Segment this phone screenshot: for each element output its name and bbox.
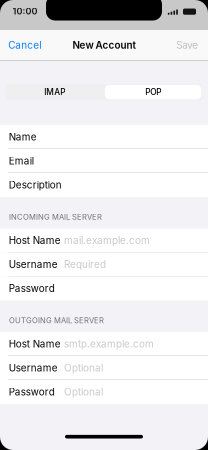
staticText: Save [176, 39, 198, 51]
staticText: INCOMING MAIL SERVER [9, 212, 102, 221]
staticText: Username [9, 258, 58, 270]
button[interactable]: Host Name [0, 228, 208, 252]
staticText: Optional [64, 362, 103, 374]
staticText: Email [9, 155, 34, 167]
button[interactable]: Host Name [0, 332, 208, 356]
staticText: Required [64, 258, 106, 270]
staticText: 10:00 [12, 6, 37, 17]
staticText: Password [9, 282, 55, 294]
staticText: OUTGOING MAIL SERVER [9, 316, 104, 325]
staticText: New Account [72, 39, 135, 51]
staticText: Password [9, 386, 55, 398]
button[interactable]: Email [0, 149, 208, 173]
button[interactable]: POP [104, 84, 202, 100]
staticText: Username [9, 362, 58, 374]
staticText: Host Name [9, 338, 61, 350]
staticText: mail.example.com [64, 234, 150, 246]
button[interactable]: Password [0, 276, 208, 300]
staticText: POP [145, 87, 161, 97]
staticText: smtp.example.com [64, 338, 154, 350]
staticText: IMAP [44, 87, 65, 97]
staticText: Name [9, 131, 37, 143]
button[interactable]: Save [169, 30, 208, 60]
button[interactable]: Cancel [0, 30, 48, 60]
button[interactable]: IMAP [6, 84, 104, 100]
staticText: Host Name [9, 234, 61, 246]
staticText: Cancel [8, 39, 41, 51]
button[interactable]: Name [0, 125, 208, 149]
button[interactable]: Description [0, 173, 208, 197]
button[interactable]: Password [0, 380, 208, 404]
button[interactable]: Username [0, 356, 208, 380]
staticText: Optional [64, 386, 103, 398]
staticText: Description [9, 179, 62, 191]
button[interactable]: Username [0, 252, 208, 276]
